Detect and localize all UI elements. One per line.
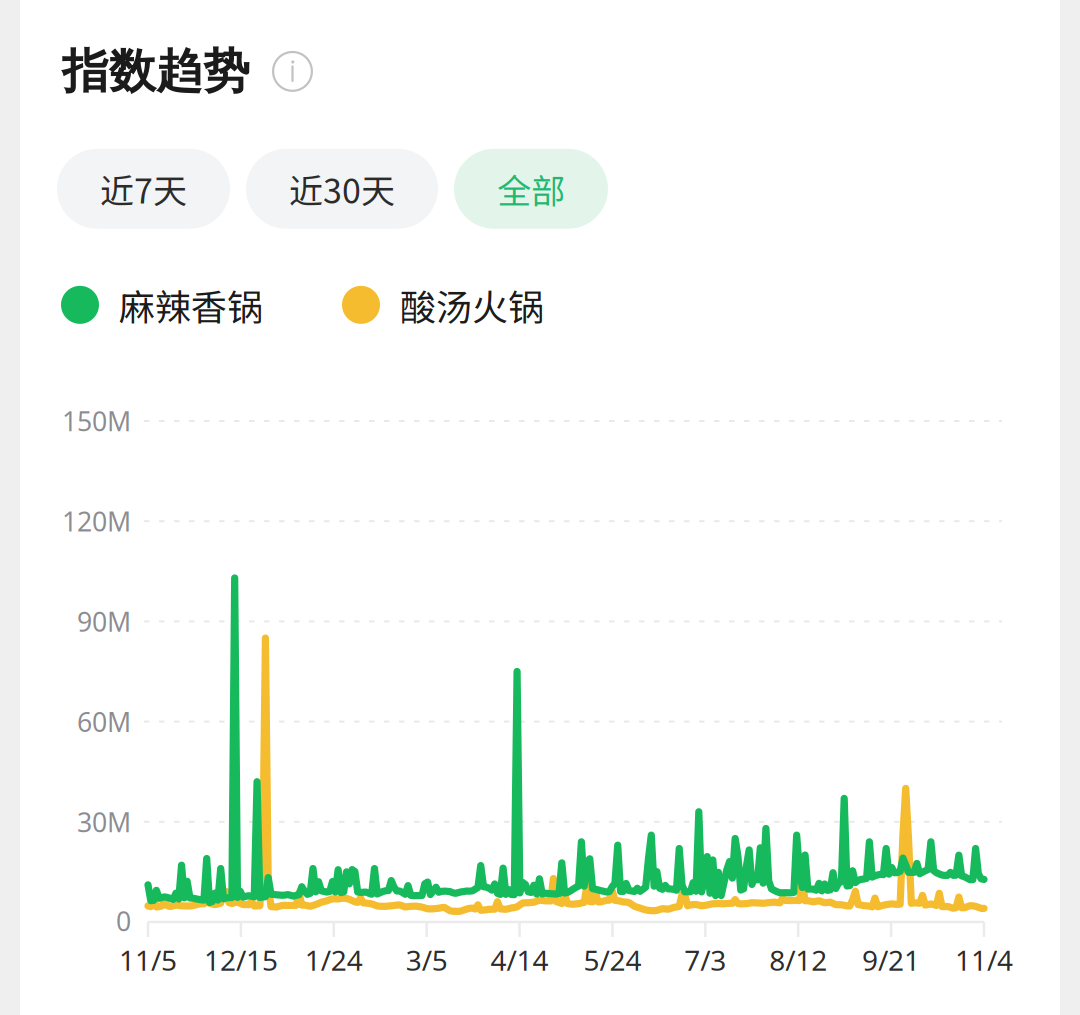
staticText: 全部 xyxy=(497,164,565,213)
button[interactable]: 近7天 xyxy=(57,149,230,229)
staticText: 9/21 xyxy=(862,941,920,979)
staticText: 酸汤火锅 xyxy=(400,279,544,331)
staticText: 近30天 xyxy=(289,164,395,213)
staticText: 7/3 xyxy=(684,941,726,979)
staticText: 150M xyxy=(62,403,131,439)
staticText: 90M xyxy=(77,604,131,639)
button[interactable]: 近30天 xyxy=(246,149,438,229)
staticText: 120M xyxy=(62,503,131,539)
staticText: 近7天 xyxy=(100,164,187,213)
staticText: 麻辣香锅 xyxy=(119,279,263,331)
staticText: 3/5 xyxy=(406,941,448,979)
staticText: 5/24 xyxy=(583,941,641,979)
staticText: 12/15 xyxy=(204,941,278,979)
staticText: 30M xyxy=(77,804,131,839)
button[interactable]: More information xyxy=(272,51,313,92)
button[interactable]: 全部 xyxy=(454,149,608,229)
staticText: 8/12 xyxy=(769,941,827,979)
staticText: 1/24 xyxy=(305,941,363,979)
staticText: 4/14 xyxy=(491,941,549,979)
staticText: 指数趋势 xyxy=(62,42,250,101)
staticText: 11/4 xyxy=(955,941,1013,979)
staticText: 0 xyxy=(116,903,131,939)
staticText: 11/5 xyxy=(119,941,177,979)
staticText: 60M xyxy=(77,704,131,739)
